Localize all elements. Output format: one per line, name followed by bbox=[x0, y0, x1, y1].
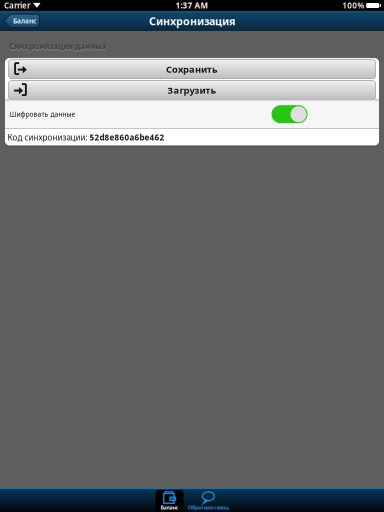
staticText: Обратная связь bbox=[188, 504, 229, 511]
staticText: 100% bbox=[342, 0, 364, 11]
button[interactable]: Шифровать данные bbox=[4, 100, 379, 128]
staticText: Загрузить bbox=[167, 84, 216, 96]
staticText: Синхронизация bbox=[149, 14, 235, 28]
staticText: Баланс bbox=[13, 17, 36, 25]
staticText: Шифровать данные bbox=[9, 110, 75, 119]
staticText: Баланс bbox=[160, 504, 178, 511]
button[interactable]: Баланс bbox=[3, 13, 40, 28]
button[interactable]: Загрузить bbox=[8, 81, 375, 100]
button[interactable]: Сохранить bbox=[8, 60, 375, 79]
staticText: 1:37 AM bbox=[175, 0, 208, 11]
button[interactable]: Обратная связь bbox=[188, 490, 228, 512]
staticText: 52d8e860a6be462 bbox=[89, 132, 164, 143]
staticText: Carrier bbox=[4, 0, 30, 11]
staticText: Код синхронизации: bbox=[7, 132, 89, 143]
staticText: Синхронизация данных bbox=[9, 41, 107, 52]
staticText: Сохранить bbox=[166, 63, 218, 75]
button[interactable]: Баланс bbox=[155, 490, 183, 512]
staticText: Синхронизация данных bbox=[9, 42, 107, 53]
